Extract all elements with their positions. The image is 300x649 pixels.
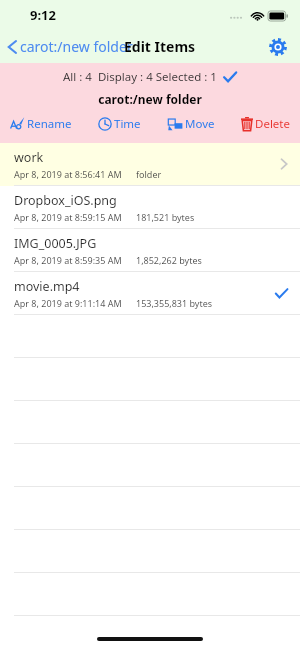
staticText: Delete [255, 116, 290, 132]
button[interactable]: Rename [8, 114, 74, 134]
button[interactable]: movie.mp4 [0, 272, 300, 315]
staticText: Rename [27, 116, 72, 132]
other: Open folder [280, 157, 288, 171]
button[interactable]: Delete [239, 114, 292, 134]
staticText: carot:/new folder [20, 37, 133, 56]
staticText: Dropbox_iOS.png [14, 192, 117, 209]
button[interactable]: IMG_0005.JPG [0, 229, 300, 272]
staticText: 9:12 [30, 6, 56, 24]
staticText: Edit Items [124, 37, 196, 56]
staticText: 153,355,831 bytes [136, 297, 213, 309]
staticText: movie.mp4 [14, 278, 80, 295]
staticText: Time [114, 116, 141, 132]
staticText: Apr 8, 2019 at 8:56:41 AM [14, 168, 122, 180]
staticText: Apr 8, 2019 at 8:59:15 AM [14, 211, 122, 223]
button[interactable]: Time [96, 114, 143, 134]
staticText: work [14, 149, 44, 166]
staticText: Apr 8, 2019 at 8:59:35 AM [14, 254, 122, 266]
staticText: IMG_0005.JPG [14, 235, 97, 252]
staticText: 1,852,262 bytes [136, 254, 202, 266]
staticText: folder [136, 168, 162, 180]
staticText: Apr 8, 2019 at 9:11:14 AM [14, 297, 122, 309]
button[interactable]: Dropbox_iOS.png [0, 186, 300, 229]
button[interactable]: Move [166, 114, 217, 134]
staticText: Move [185, 116, 215, 132]
staticText: 181,521 bytes [136, 211, 195, 223]
button[interactable]: Settings [266, 35, 290, 59]
staticText: carot:/new folder [0, 91, 300, 107]
button[interactable]: work [0, 143, 300, 186]
staticText: All : 4 Display : 4 Selected : 1 [63, 69, 217, 85]
button[interactable]: carot:/new folder [7, 37, 133, 56]
